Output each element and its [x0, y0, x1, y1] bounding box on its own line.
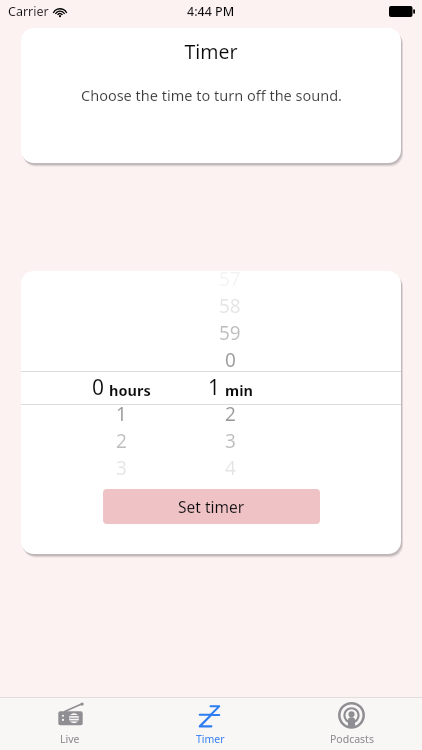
staticText: Live [60, 732, 80, 746]
staticText: 3 [225, 428, 236, 454]
staticText: 0 [92, 373, 105, 402]
staticText: Set timer [178, 496, 245, 517]
staticText: Timer [184, 38, 238, 65]
staticText: 3 [116, 455, 127, 481]
staticText: Timer [196, 732, 225, 746]
button[interactable]: Live [0, 698, 140, 750]
staticText: 59 [219, 320, 241, 346]
staticText: 1 [208, 373, 221, 402]
staticText: 58 [219, 293, 241, 319]
staticText: 57 [219, 271, 241, 292]
staticText: 2 [225, 401, 236, 427]
button[interactable]: Set timer [103, 489, 320, 524]
staticText: Choose the time to turn off the sound. [81, 85, 342, 105]
button[interactable]: Podcasts [281, 698, 422, 750]
staticText: 1 [116, 401, 127, 427]
staticText: min [225, 380, 253, 400]
staticText: 4:44 PM [187, 3, 235, 20]
staticText: hours [109, 380, 151, 400]
staticText: 4 [225, 455, 236, 481]
button[interactable]: Timer [140, 698, 281, 750]
staticText: Podcasts [330, 732, 374, 746]
staticText: 2 [116, 428, 127, 454]
staticText: 0 [225, 347, 236, 373]
staticText: Carrier [8, 3, 49, 20]
